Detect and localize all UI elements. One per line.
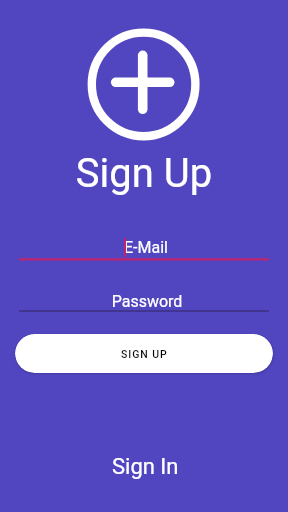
button[interactable]: Sign In [1,451,288,483]
button[interactable]: SIGN UP [15,334,273,373]
staticText: SIGN UP [121,348,168,360]
button[interactable]: Sign up [80,22,208,150]
button[interactable]: Password [19,282,269,312]
staticText: E-Mail [21,238,271,257]
staticText: Sign In [112,454,179,480]
button[interactable]: E-Mail [19,228,269,260]
staticText: Sign Up [0,150,288,197]
staticText: Password [22,292,272,311]
